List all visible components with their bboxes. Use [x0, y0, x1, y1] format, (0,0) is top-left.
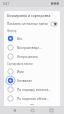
button[interactable]: Название	[4, 76, 60, 85]
button[interactable]: Непрочитано	[4, 52, 60, 61]
staticText: Фильтр	[7, 29, 17, 33]
button[interactable]: Показать системные папки	[4, 19, 60, 28]
staticText: Воспроизведено	[17, 46, 42, 50]
button[interactable]: Все	[4, 34, 60, 43]
button[interactable]: Воспроизведено	[4, 43, 60, 52]
staticText: 9:41	[3, 2, 9, 6]
staticText: Показать системные папки	[7, 22, 49, 26]
button[interactable]: Back	[9, 106, 19, 114]
staticText: Имя	[17, 70, 27, 74]
staticText: Все	[17, 37, 29, 41]
button[interactable]: Имя	[4, 67, 60, 76]
staticText: Непрочитано	[17, 55, 38, 59]
other: Показать системные папки	[51, 22, 57, 26]
staticText: Сортировать записи	[7, 62, 33, 66]
staticText: OK	[30, 104, 35, 105]
staticText: Название	[17, 79, 35, 83]
button[interactable]: OK	[27, 103, 38, 106]
button[interactable]: По падению обновления	[4, 94, 60, 103]
button[interactable]: Recents	[46, 106, 56, 114]
button[interactable]: По порядку использования	[4, 85, 60, 94]
staticText: Блокировка и сортировка	[7, 13, 51, 18]
staticText: По падению обновления	[17, 97, 49, 101]
button[interactable]: Home	[27, 106, 37, 114]
staticText: По порядку использования	[17, 88, 52, 92]
